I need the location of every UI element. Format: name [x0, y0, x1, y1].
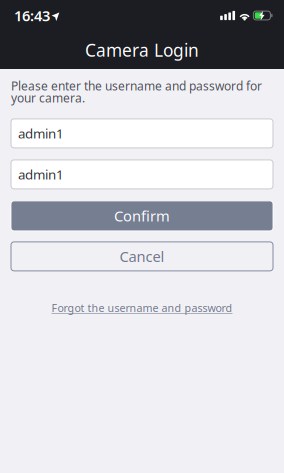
- staticText: admin1: [18, 124, 64, 142]
- staticText: Forgot the username and password: [51, 301, 232, 315]
- staticText: admin1: [18, 165, 64, 183]
- staticText: Camera Login: [85, 38, 199, 61]
- staticText: Confirm: [114, 206, 170, 226]
- staticText: Cancel: [119, 247, 164, 266]
- button[interactable]: Forgot the username and password: [11, 301, 273, 315]
- staticText: Please enter the username and password f…: [11, 78, 262, 106]
- button[interactable]: Confirm: [11, 201, 273, 231]
- button[interactable]: Cancel: [11, 242, 273, 271]
- staticText: 16:43: [14, 6, 50, 25]
